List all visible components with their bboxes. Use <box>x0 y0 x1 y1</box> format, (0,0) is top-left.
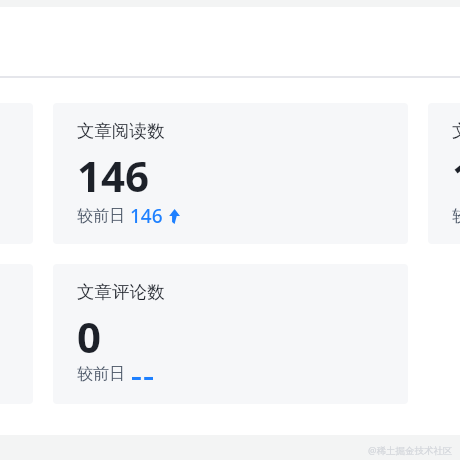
button[interactable]: 文章评论数 <box>53 264 408 404</box>
staticText: 文章阅读数 <box>77 120 165 142</box>
staticText: 12 <box>452 147 460 204</box>
staticText: 146 <box>130 203 163 229</box>
staticText: 0 <box>77 308 102 365</box>
staticText: 较前日 <box>77 206 125 226</box>
staticText: 文章评论数 <box>77 281 165 303</box>
other: 趋势上升 <box>168 209 180 224</box>
button[interactable]: 文章点赞数 <box>428 103 460 244</box>
staticText: @稀土掘金技术社区 <box>368 444 453 457</box>
staticText: 文章点赞数 <box>452 120 460 142</box>
button[interactable]: 文章阅读数 <box>53 103 408 244</box>
staticText: 146 <box>77 147 150 204</box>
staticText: 较前日 <box>452 206 460 226</box>
staticText: 较前日 <box>77 364 125 384</box>
